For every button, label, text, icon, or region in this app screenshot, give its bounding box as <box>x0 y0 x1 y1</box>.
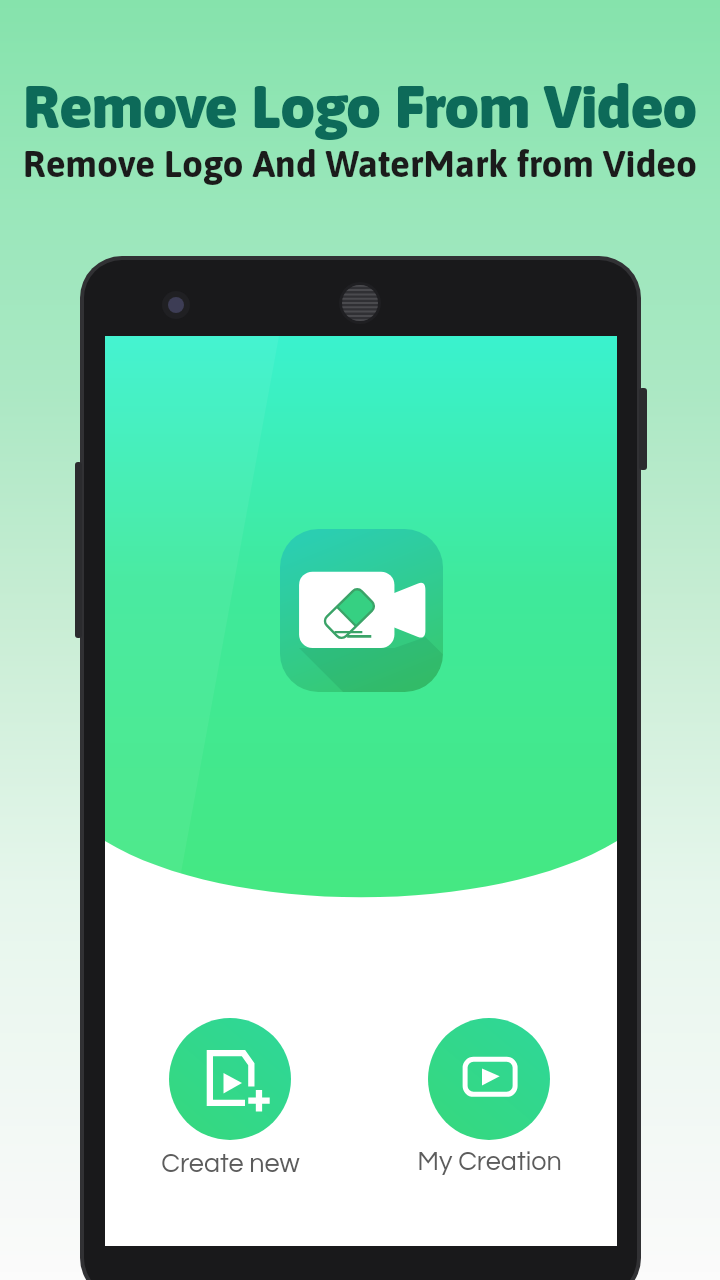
staticText: Remove Logo From Video <box>0 72 720 141</box>
staticText: Remove Logo And WaterMark from Video <box>0 142 720 184</box>
button[interactable]: Create new <box>146 1018 314 1178</box>
staticText: Create new <box>161 1150 300 1178</box>
staticText: My Creation <box>417 1148 562 1176</box>
button[interactable]: My Creation <box>405 1018 573 1176</box>
